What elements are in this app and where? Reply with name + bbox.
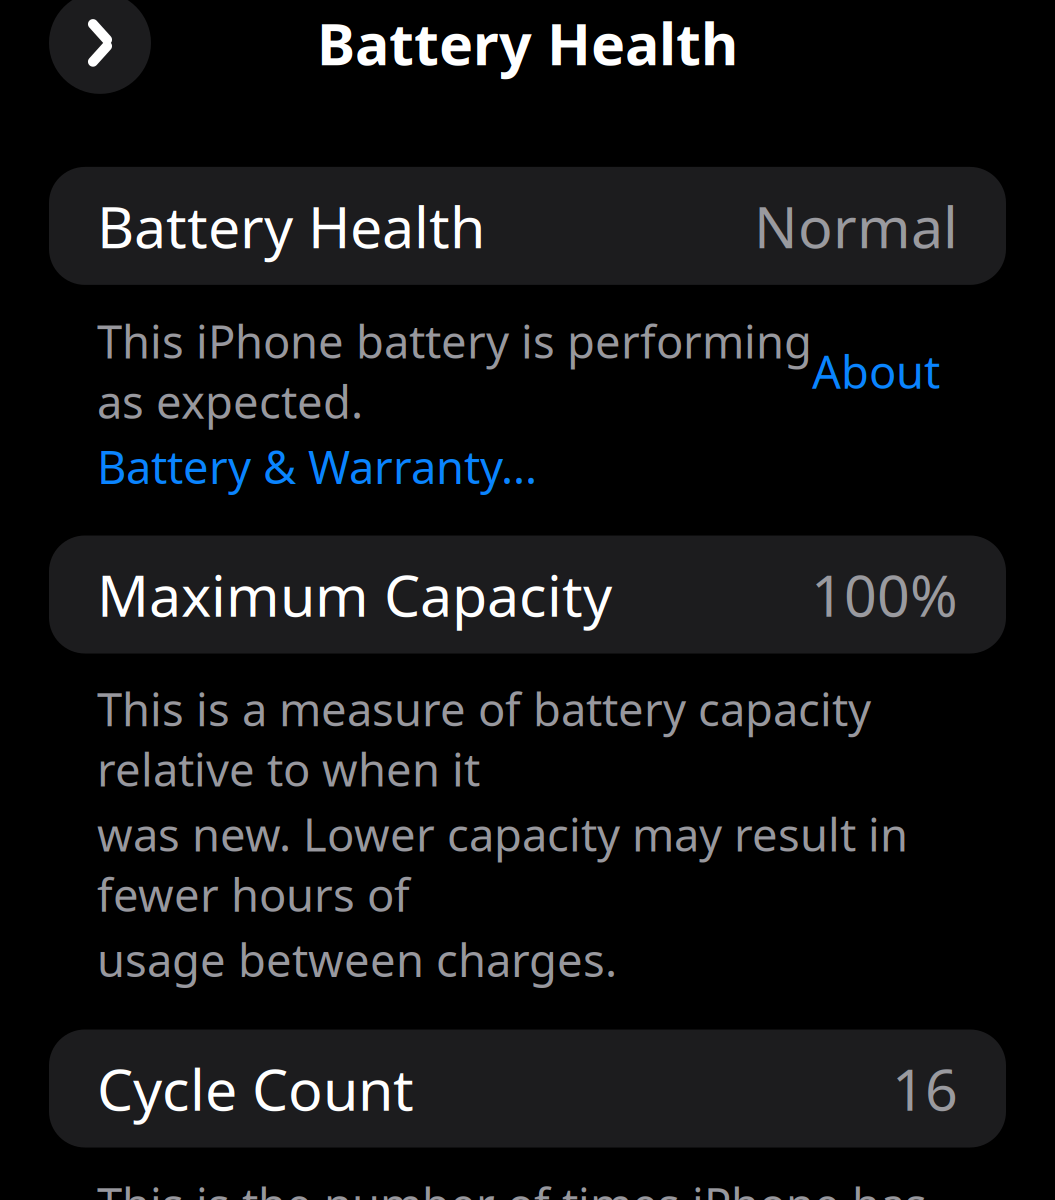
staticText: This is the number of times iPhone has u… (97, 1173, 927, 1200)
staticText: Battery & Warranty... (97, 436, 537, 496)
staticText: 100% (811, 556, 958, 632)
button[interactable]: Cycle Count (49, 1029, 1006, 1147)
staticText: 16 (892, 1050, 958, 1126)
staticText: Cycle Count (97, 1050, 414, 1126)
staticText: Maximum Capacity (97, 556, 612, 632)
button[interactable]: Back (49, 0, 151, 94)
button[interactable]: Maximum Capacity (49, 535, 1006, 653)
staticText: Battery Health (317, 5, 738, 81)
staticText: This is a measure of battery capacity re… (97, 678, 871, 799)
staticText: was new. Lower capacity may result in fe… (97, 804, 908, 924)
button[interactable]: Battery Health (49, 167, 1006, 285)
staticText: Normal (754, 188, 958, 264)
staticText: Battery Health (97, 188, 485, 264)
staticText: About (812, 341, 940, 401)
staticText: This iPhone battery is performing as exp… (97, 311, 812, 431)
staticText: usage between charges. (97, 929, 617, 989)
